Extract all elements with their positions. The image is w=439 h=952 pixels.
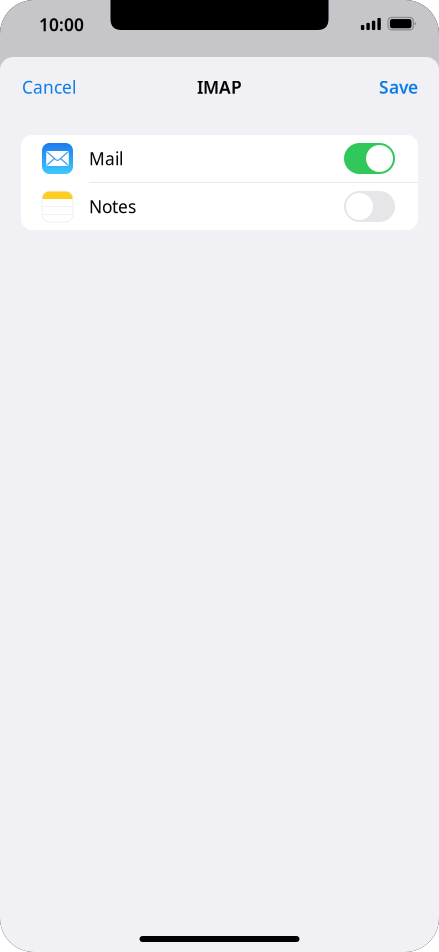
button[interactable]: Notes bbox=[21, 183, 418, 230]
staticText: IMAP bbox=[197, 75, 242, 98]
staticText: Notes bbox=[89, 195, 136, 218]
button[interactable]: Save bbox=[365, 61, 439, 112]
staticText: Save bbox=[379, 75, 418, 98]
staticText: 10:00 bbox=[39, 13, 84, 36]
button[interactable]: Cancel bbox=[0, 61, 90, 112]
staticText: Mail bbox=[89, 147, 123, 170]
button[interactable]: Mail bbox=[21, 135, 418, 182]
staticText: Cancel bbox=[22, 75, 76, 98]
